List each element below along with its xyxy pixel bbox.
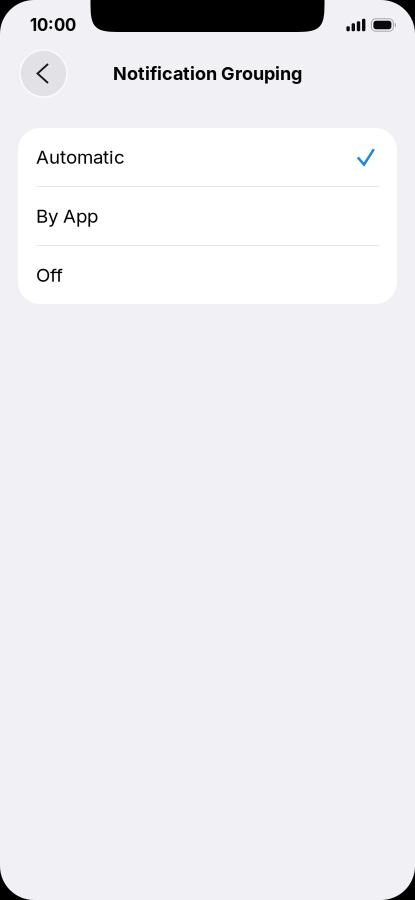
staticText: Notification Grouping bbox=[113, 63, 302, 84]
button[interactable]: Off bbox=[18, 246, 397, 304]
button[interactable]: By App bbox=[18, 187, 397, 245]
staticText: By App bbox=[36, 205, 98, 227]
button[interactable]: Automatic bbox=[18, 128, 397, 186]
button[interactable]: Back bbox=[20, 50, 67, 97]
staticText: Off bbox=[36, 264, 63, 286]
staticText: Automatic bbox=[36, 146, 125, 168]
staticText: 10:00 bbox=[30, 15, 76, 35]
